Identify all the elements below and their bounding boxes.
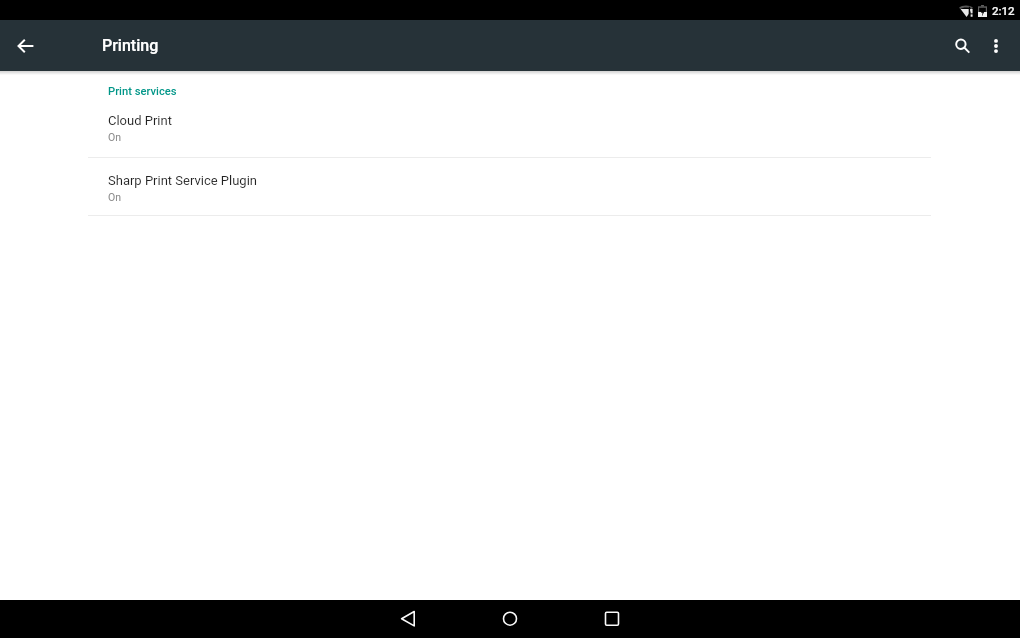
button[interactable]: Navigate up [9,29,42,62]
staticText: On [108,191,122,203]
staticText: 2:12 [992,4,1015,17]
button[interactable]: Search [945,28,981,64]
button[interactable]: Home [491,600,531,638]
staticText: Sharp Print Service Plugin [108,173,257,188]
button[interactable]: Sharp Print Service Plugin [0,158,1020,215]
button[interactable]: More options [981,29,1015,63]
staticText: Printing [102,36,159,55]
staticText: Print services [108,85,177,98]
staticText: Cloud Print [108,113,172,128]
button[interactable]: Cloud Print [0,107,1020,157]
staticText: On [108,131,122,143]
